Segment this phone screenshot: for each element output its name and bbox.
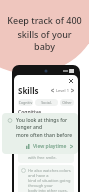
button[interactable]: Playtime	[7, 143, 73, 150]
button[interactable]: He also watches colors and have a kind o…	[18, 165, 74, 192]
staticText: Keep track of 400	[7, 14, 82, 26]
other: Previous level	[51, 89, 54, 92]
staticText: Level 1	[56, 88, 69, 93]
staticText: more often than before	[16, 132, 73, 139]
button[interactable]: Social-emotional	[35, 99, 58, 106]
staticText: You look at things for longer and	[16, 117, 73, 131]
staticText: Skills	[18, 85, 39, 96]
button[interactable]: Other	[60, 99, 74, 106]
staticText: Cognitive	[18, 109, 42, 116]
staticText: Cognitive	[18, 100, 33, 105]
button[interactable]: Close	[67, 77, 74, 84]
button[interactable]: He also smiled longer and far more with …	[18, 142, 74, 163]
staticText: skills of your baby	[6, 28, 83, 52]
button[interactable]: Cognitive	[18, 99, 33, 106]
button[interactable]: View playtime >	[16, 137, 76, 146]
other: Playtime	[26, 144, 31, 149]
staticText: He also smiled longer and far more with …	[28, 145, 71, 160]
staticText: Other	[62, 100, 72, 105]
staticText: He also watches colors and have a kind o…	[28, 168, 71, 192]
staticText: Social-emotional	[35, 100, 58, 105]
other: Next level	[71, 89, 74, 92]
staticText: View playtime	[33, 143, 67, 150]
button[interactable]: You look at things for longer and	[2, 113, 78, 154]
button[interactable]: Previous level	[51, 88, 74, 93]
